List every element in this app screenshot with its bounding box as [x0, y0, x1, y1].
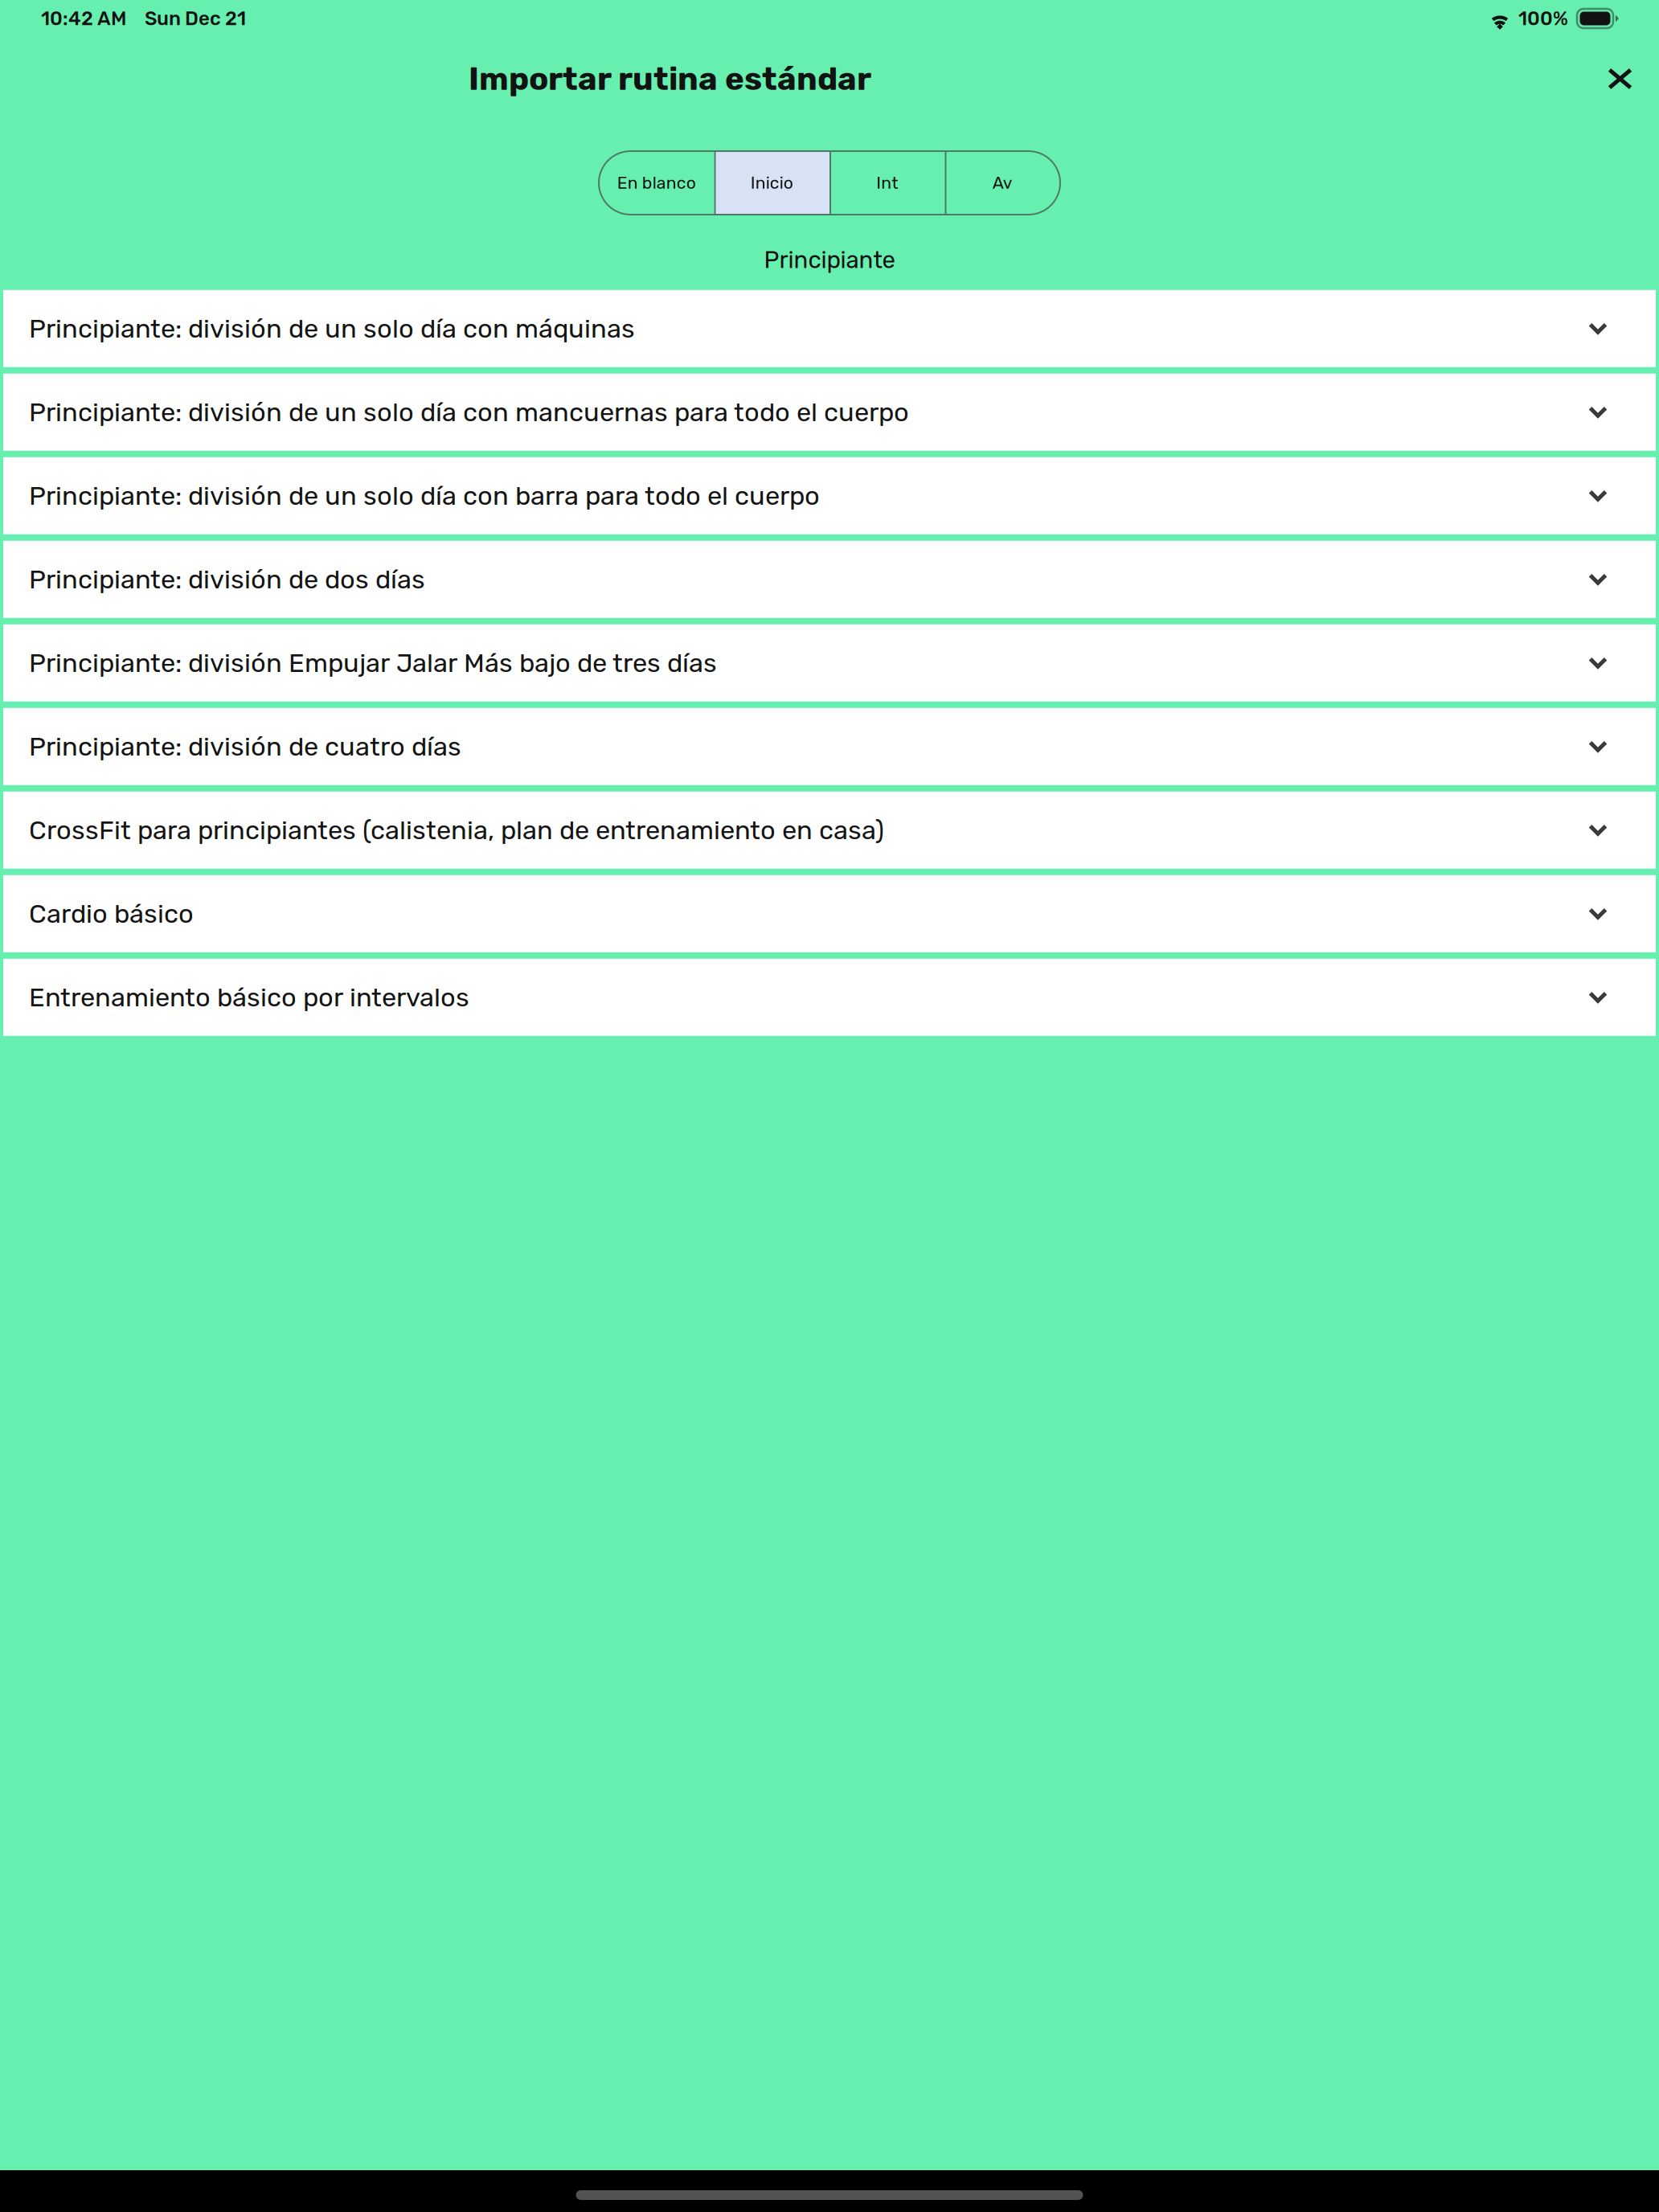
button[interactable]: Entrenamiento básico por intervalos: [3, 959, 1656, 1036]
button[interactable]: En blanco: [599, 151, 714, 215]
staticText: 10:42 AM: [41, 7, 126, 30]
staticText: En blanco: [617, 173, 696, 193]
button[interactable]: Principiante: división de un solo día co…: [3, 290, 1656, 367]
button[interactable]: Principiante: división de un solo día co…: [3, 374, 1656, 451]
button[interactable]: CrossFit para principiantes (calistenia,…: [3, 792, 1656, 869]
button[interactable]: Inicio: [714, 151, 829, 215]
staticText: Cardio básico: [29, 898, 194, 929]
button[interactable]: Av: [945, 151, 1060, 215]
staticText: 100%: [1518, 7, 1568, 30]
staticText: Principiante: división de un solo día co…: [29, 313, 635, 344]
staticText: Principiante: división de un solo día co…: [29, 480, 820, 511]
staticText: Inicio: [751, 173, 793, 193]
staticText: Int: [876, 173, 898, 193]
staticText: Sun Dec 21: [145, 7, 246, 30]
button[interactable]: Int: [829, 151, 945, 215]
button[interactable]: Principiante: división de un solo día co…: [3, 457, 1656, 534]
staticText: Principiante: división de cuatro días: [29, 731, 461, 762]
button[interactable]: Principiante: división de dos días: [3, 541, 1656, 618]
staticText: Principiante: división Empujar Jalar Más…: [29, 647, 717, 678]
staticText: Av: [993, 173, 1013, 193]
button[interactable]: Cardio básico: [3, 875, 1656, 952]
button[interactable]: Principiante: división Empujar Jalar Más…: [3, 624, 1656, 702]
staticText: Entrenamiento básico por intervalos: [29, 982, 469, 1013]
button[interactable]: Principiante: división de cuatro días: [3, 708, 1656, 785]
staticText: Importar rutina estándar: [469, 60, 871, 98]
staticText: Principiante: división de dos días: [29, 564, 425, 595]
staticText: Principiante: [764, 246, 895, 274]
staticText: CrossFit para principiantes (calistenia,…: [29, 815, 884, 846]
button[interactable]: Cerrar: [1600, 60, 1641, 98]
staticText: Principiante: división de un solo día co…: [29, 397, 909, 428]
